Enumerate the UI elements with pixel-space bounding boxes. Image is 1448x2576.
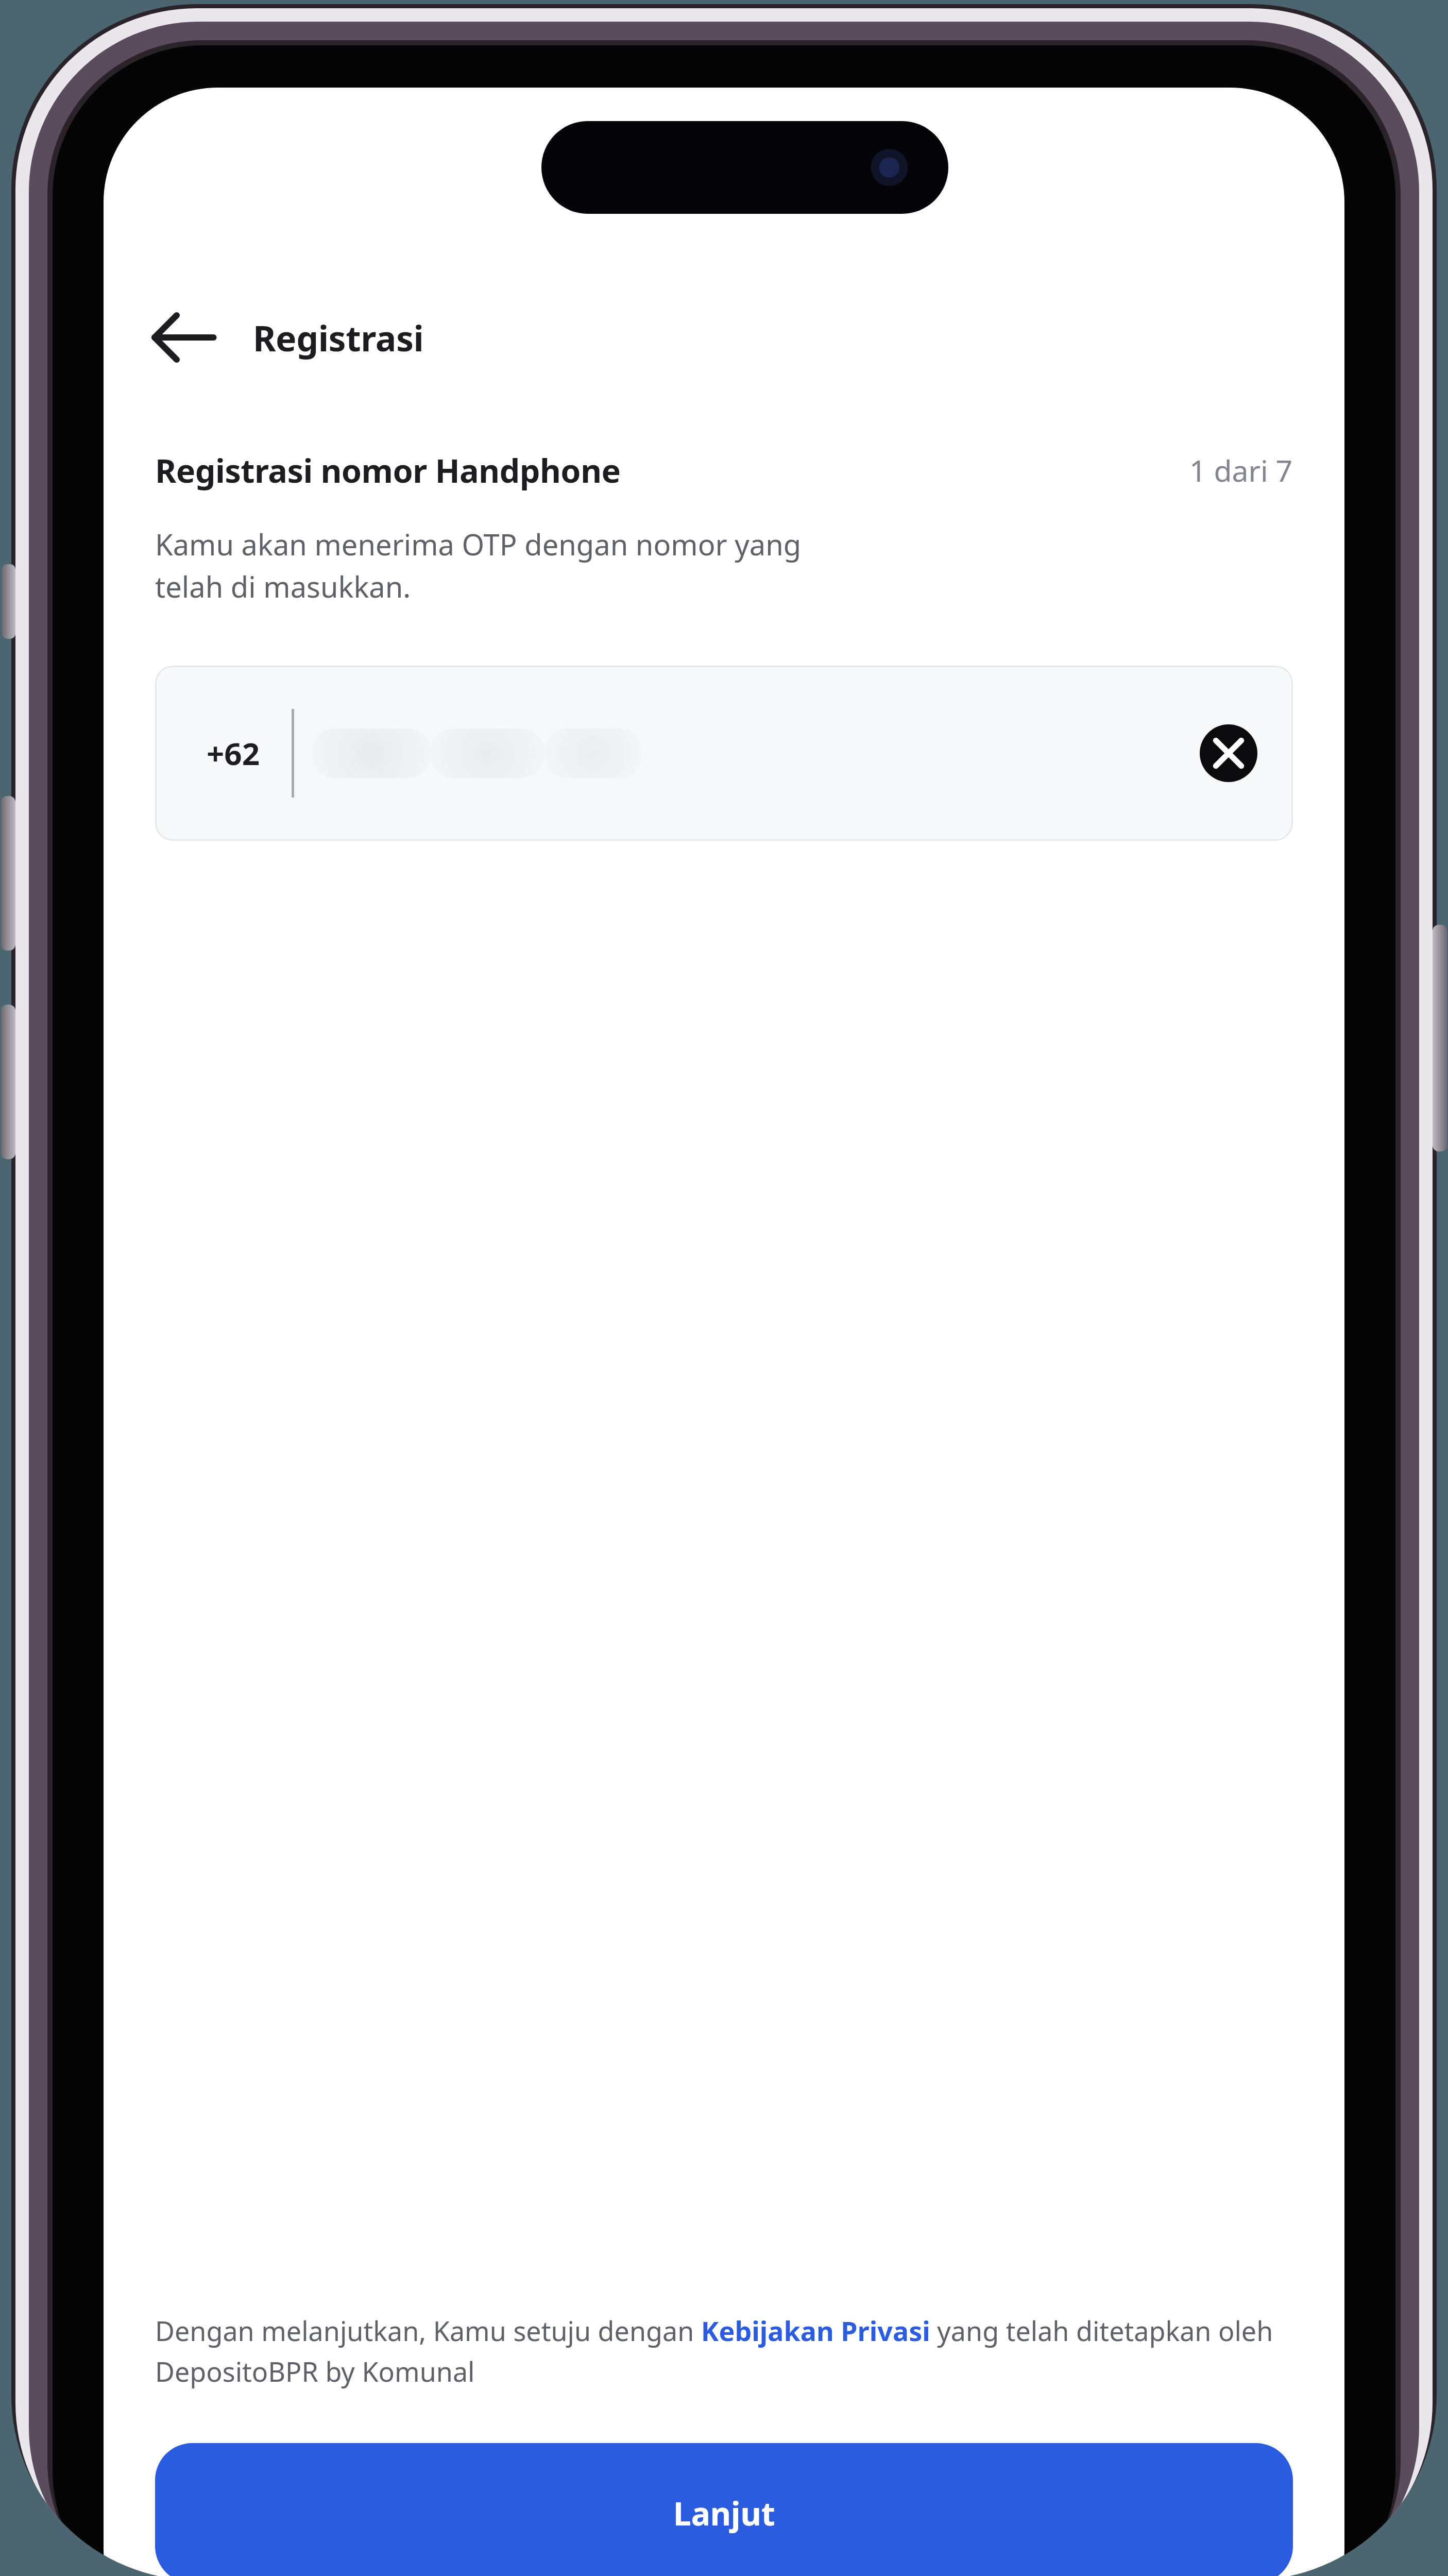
button[interactable]: Clear bbox=[1185, 709, 1272, 797]
staticText: Registrasi nomor Handphone bbox=[155, 448, 621, 493]
button[interactable]: +62 bbox=[155, 666, 1293, 841]
staticText: Lanjut bbox=[673, 2492, 775, 2535]
button[interactable]: Lanjut bbox=[155, 2443, 1293, 2576]
staticText: Kamu akan menerima OTP dengan nomor yang… bbox=[155, 524, 802, 606]
button[interactable]: Back bbox=[140, 294, 227, 381]
staticText: +62 bbox=[207, 732, 260, 774]
staticText: 1 dari 7 bbox=[1189, 450, 1293, 490]
button[interactable]: Dengan melanjutkan, Kamu setuju dengan K… bbox=[155, 2312, 1293, 2389]
staticText: Dengan melanjutkan, Kamu setuju dengan K… bbox=[155, 2312, 1293, 2389]
staticText: Registrasi bbox=[253, 314, 424, 362]
